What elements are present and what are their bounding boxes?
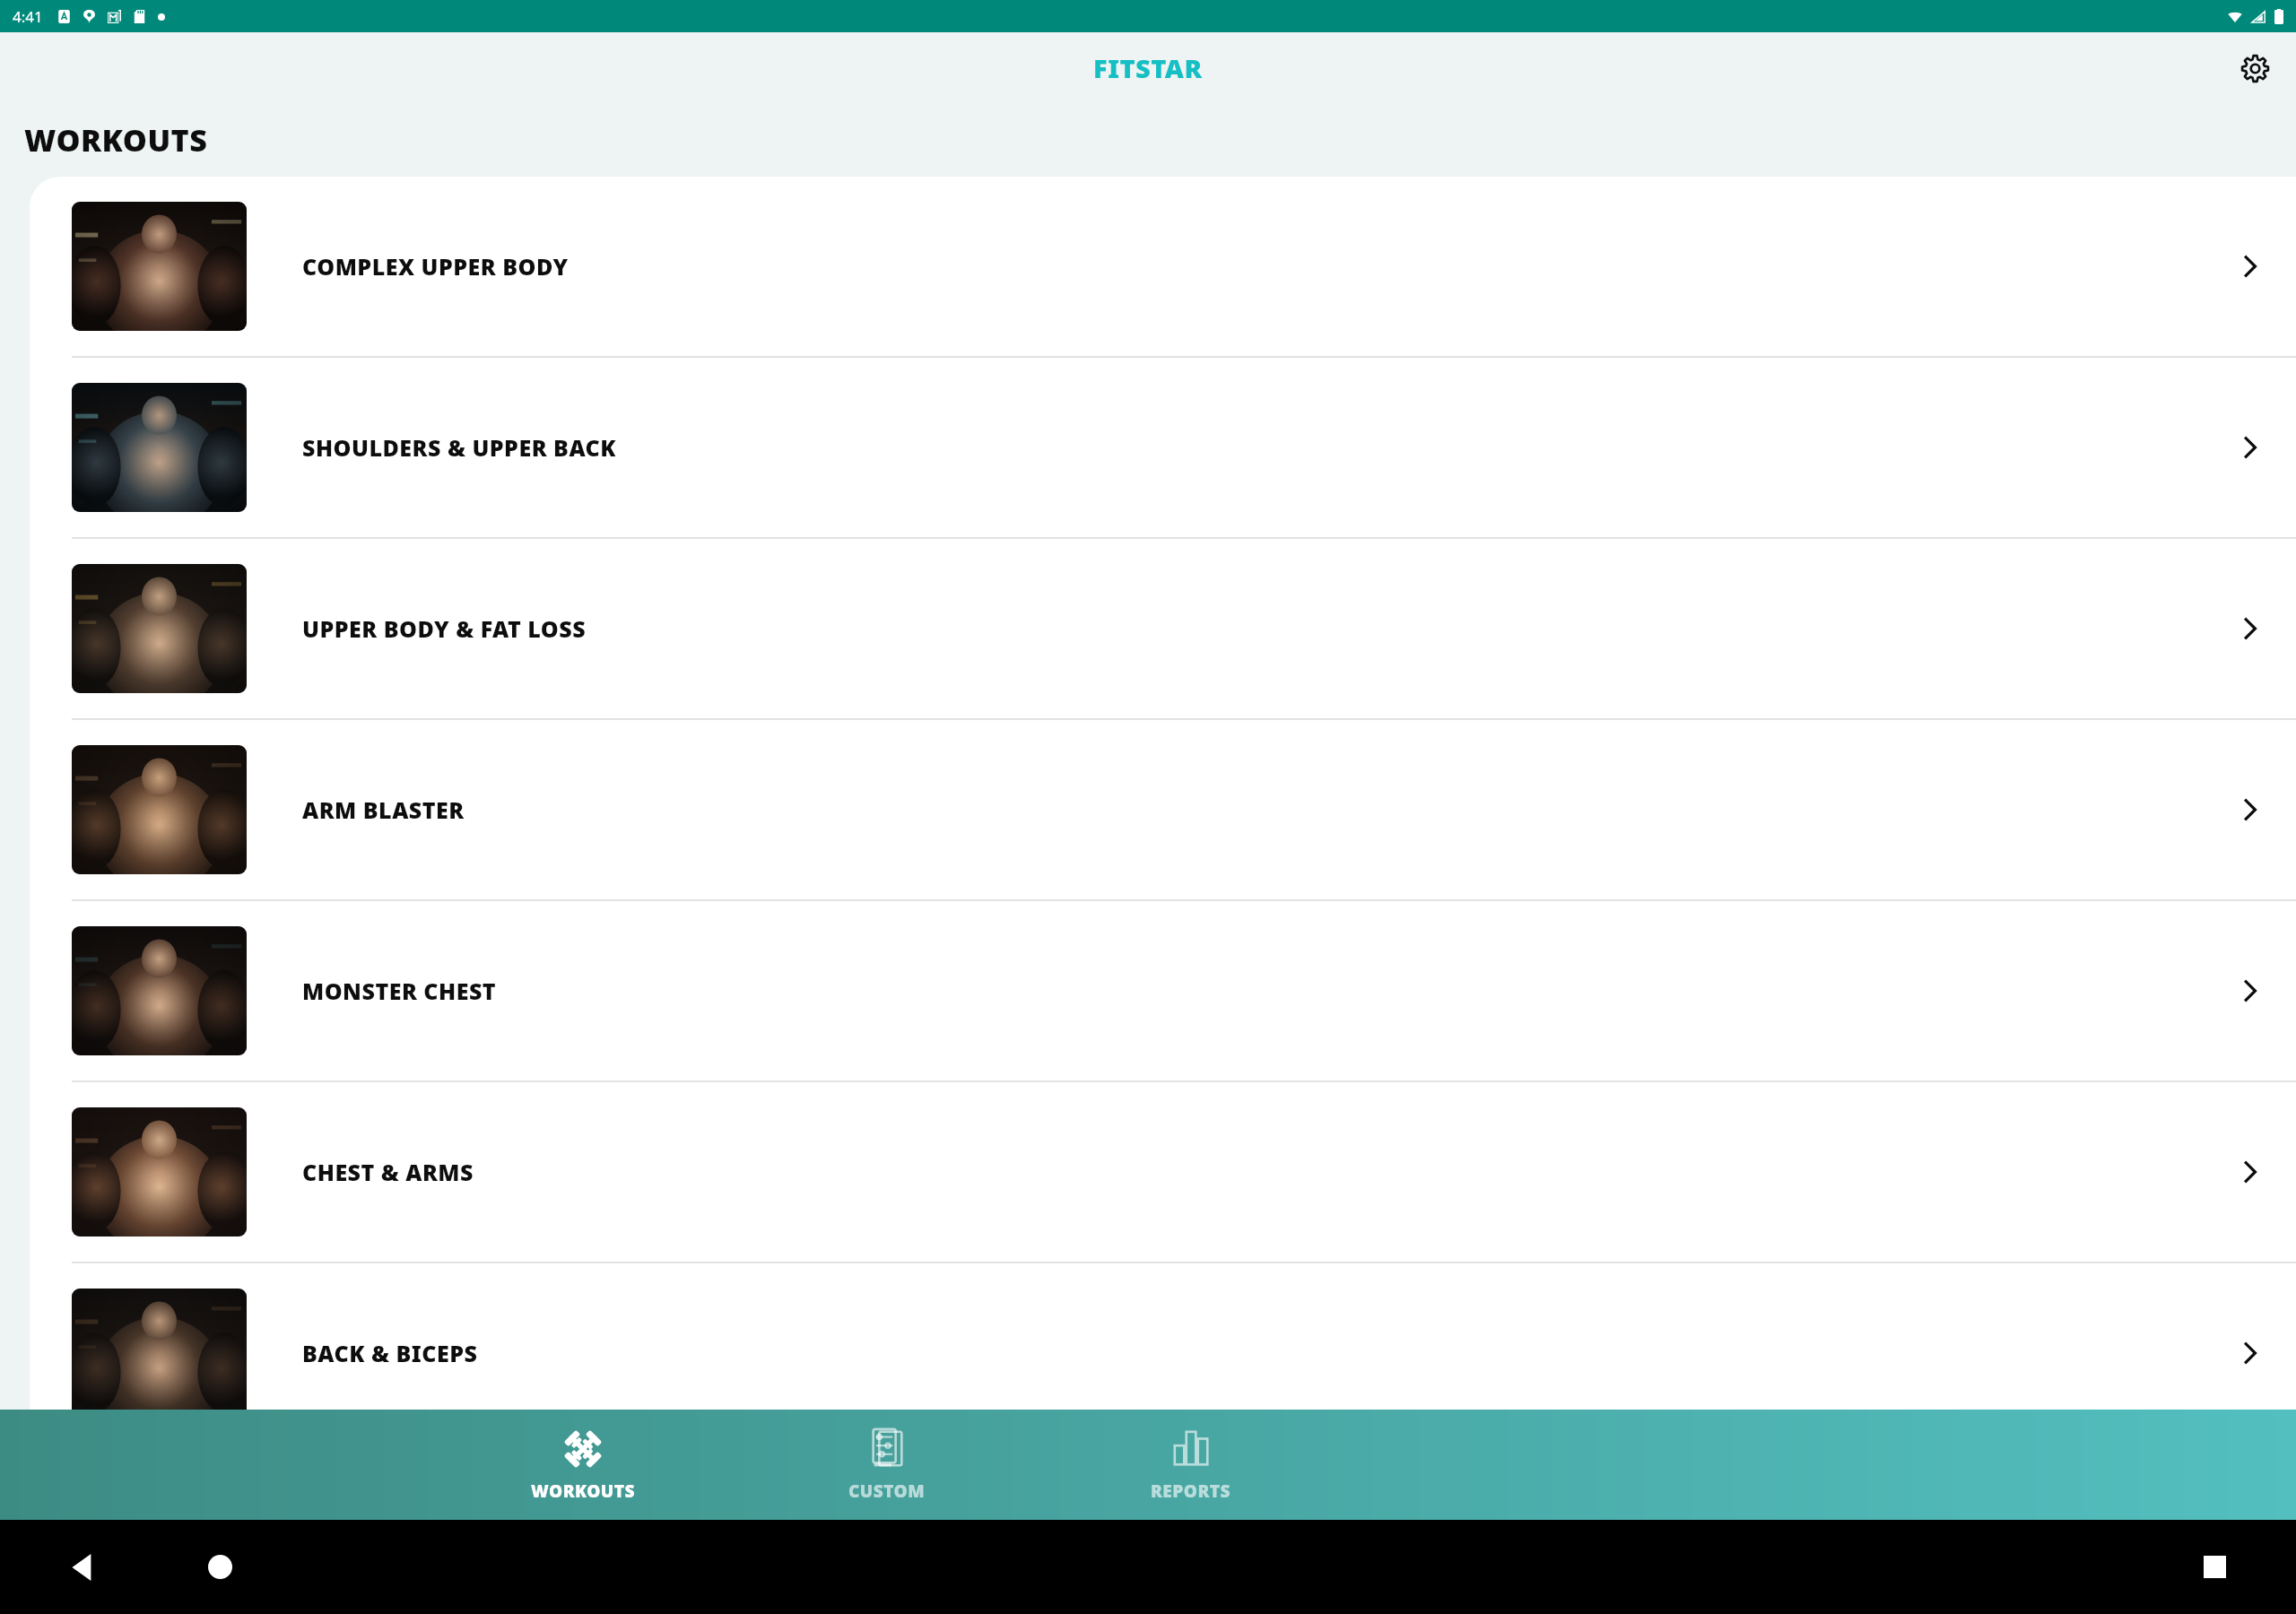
button[interactable]: WORKOUTS [493,1410,673,1520]
button[interactable]: Settings [2231,45,2278,91]
button[interactable]: ARM BLASTER [30,720,2296,899]
button[interactable]: SHOULDERS & UPPER BACK [30,358,2296,537]
staticText: UPPER BODY & FAT LOSS [302,613,2235,644]
button[interactable]: CHEST & ARMS [30,1082,2296,1262]
button[interactable]: UPPER BODY & FAT LOSS [30,539,2296,718]
staticText: 4:41 [13,6,43,27]
button[interactable]: BACK & BICEPS [30,1263,2296,1443]
staticText: ARM BLASTER [302,794,2235,825]
button[interactable]: REPORTS [1101,1410,1281,1520]
staticText: CUSTOM [848,1479,926,1503]
staticText: SHOULDERS & UPPER BACK [302,432,2235,463]
button[interactable]: COMPLEX UPPER BODY [30,177,2296,356]
staticText: BACK & BICEPS [302,1338,2235,1368]
staticText: WORKOUTS [24,119,208,161]
button[interactable]: CUSTOM [797,1410,977,1520]
staticText: WORKOUTS [531,1479,635,1503]
staticText: MONSTER CHEST [302,976,2235,1006]
staticText: FITSTAR [1093,50,1203,85]
staticText: COMPLEX UPPER BODY [302,251,2235,282]
staticText: CHEST & ARMS [302,1157,2235,1187]
staticText: REPORTS [1151,1479,1231,1503]
button[interactable]: MONSTER CHEST [30,901,2296,1080]
